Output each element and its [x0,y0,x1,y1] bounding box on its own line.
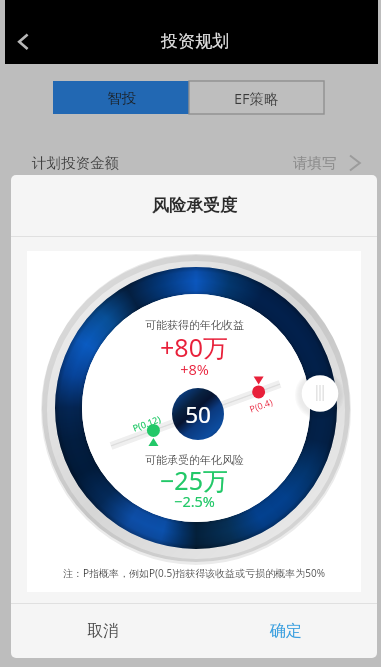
staticText: +8% [180,359,209,379]
staticText: 可能承受的年化风险 [145,453,244,467]
staticText: 风险承受度 [152,195,237,216]
button[interactable]: 智投 [53,81,189,114]
staticText: 取消 [87,621,119,641]
staticText: 请填写 [293,154,337,172]
staticText: P(0.4) [248,395,274,415]
staticText: −2.5% [174,491,215,511]
staticText: 投资规划 [161,31,229,52]
staticText: −25万 [160,463,228,497]
button[interactable]: Back [8,20,42,54]
staticText: +80万 [160,330,228,364]
staticText: 50 [185,399,211,430]
button[interactable]: 确定 [194,604,377,658]
button[interactable]: 取消 [11,604,194,658]
staticText: 可能获得的年化收益 [145,318,244,332]
staticText: 注：P指概率，例如P(0.5)指获得该收益或亏损的概率为50% [63,566,325,580]
staticText: 确定 [270,621,302,641]
staticText: 智投 [107,89,136,107]
staticText: 计划投资金额 [32,154,119,172]
button[interactable]: EF策略 [189,81,324,114]
staticText: P(0.12) [131,412,162,434]
staticText: EF策略 [234,88,279,108]
